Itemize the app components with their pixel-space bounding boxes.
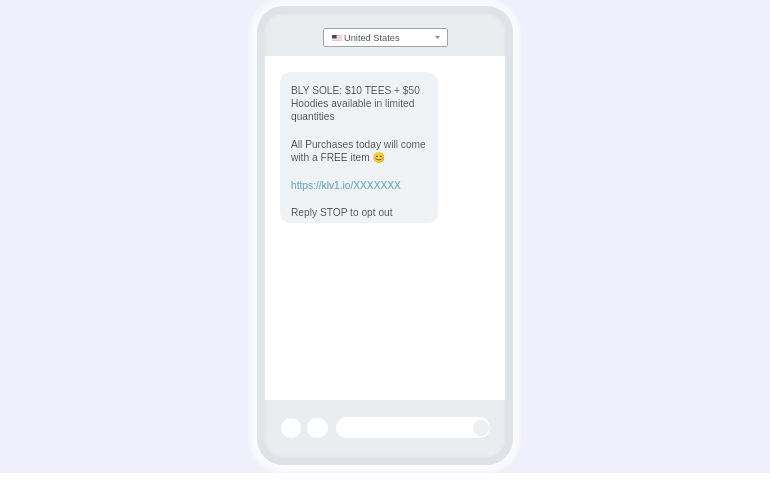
staticText: Reply STOP to opt out xyxy=(291,207,393,218)
staticText: https://klv1.io/XXXXXXX xyxy=(291,180,401,191)
button[interactable]: BLY SOLE: $10 TEES + $50 Hoodies availab… xyxy=(280,72,438,223)
button[interactable]: Add attachment xyxy=(281,418,301,438)
button[interactable]: Send message xyxy=(473,420,489,436)
button[interactable]: Send message xyxy=(336,417,490,438)
staticText: All Purchases today will come with a FRE… xyxy=(291,139,428,164)
button[interactable]: United States xyxy=(323,28,448,47)
staticText: BLY SOLE: $10 TEES + $50 Hoodies availab… xyxy=(291,85,428,123)
button[interactable]: Open camera xyxy=(307,418,328,438)
staticText: United States xyxy=(344,33,400,43)
